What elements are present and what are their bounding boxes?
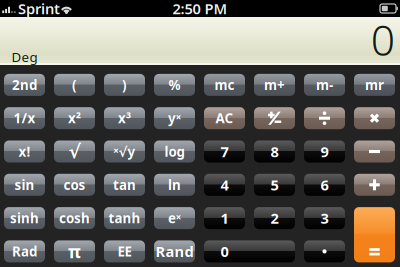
button[interactable]: x² (54, 107, 95, 129)
button[interactable]: % (154, 74, 195, 96)
button[interactable]: ln (154, 174, 195, 196)
staticText: m- (316, 76, 333, 94)
button[interactable]: x! (4, 140, 45, 162)
staticText: Rad (12, 242, 37, 260)
button[interactable]: yˣ (154, 107, 195, 129)
staticText: 2nd (12, 76, 37, 94)
button[interactable]: EE (104, 240, 145, 262)
button[interactable]: cos (54, 174, 95, 196)
staticText: 8 (270, 142, 278, 161)
button[interactable]: Plus (354, 174, 395, 196)
staticText: 2:50 PM (172, 0, 227, 18)
staticText: x! (18, 143, 30, 160)
button[interactable]: 1/x (4, 107, 45, 129)
button[interactable]: 7 (204, 140, 245, 162)
button[interactable]: sinh (4, 207, 45, 229)
button[interactable]: sin (4, 174, 45, 196)
staticText: EE (117, 242, 131, 260)
staticText: 4 (220, 175, 228, 195)
staticText: 5 (270, 175, 278, 195)
staticText: 6 (320, 175, 328, 195)
button[interactable]: x³ (104, 107, 145, 129)
button[interactable]: 4 (204, 174, 245, 196)
button[interactable]: eˣ (154, 207, 195, 229)
staticText: 1/x (13, 109, 35, 127)
button[interactable]: 5 (254, 174, 295, 196)
staticText: 2 (270, 208, 278, 228)
button[interactable]: Equals (354, 207, 395, 262)
staticText: mr (365, 76, 384, 94)
staticText: 1 (220, 208, 228, 228)
staticText: 7 (220, 142, 228, 161)
button[interactable]: 2nd (4, 74, 45, 96)
staticText: log (164, 143, 184, 160)
staticText: x² (68, 109, 81, 127)
button[interactable]: Minus (354, 140, 395, 162)
button[interactable]: 2 (254, 207, 295, 229)
button[interactable]: mc (204, 74, 245, 96)
button[interactable]: 0 (204, 240, 295, 262)
staticText: ) (122, 76, 127, 94)
button[interactable]: log (154, 140, 195, 162)
button[interactable]: 9 (304, 140, 345, 162)
button[interactable]: ( (54, 74, 95, 96)
staticText: m+ (264, 76, 285, 94)
staticText: eˣ (168, 209, 181, 227)
button[interactable]: cosh (54, 207, 95, 229)
staticText: √ (68, 141, 80, 162)
button[interactable]: π (54, 240, 95, 262)
staticText: ( (72, 76, 77, 94)
staticText: π (68, 240, 81, 263)
staticText: ˣ√y (113, 143, 135, 160)
staticText: cos (63, 176, 85, 194)
staticText: mc (214, 76, 234, 94)
staticText: sin (14, 176, 34, 194)
button[interactable]: 1 (204, 207, 245, 229)
staticText: 9 (320, 142, 328, 161)
button[interactable]: Rad (4, 240, 45, 262)
button[interactable]: m- (304, 74, 345, 96)
button[interactable]: mr (354, 74, 395, 96)
staticText: yˣ (168, 109, 181, 127)
staticText: ln (168, 176, 181, 194)
staticText: tan (113, 176, 136, 194)
button[interactable]: Rand (154, 240, 195, 262)
staticText: AC (215, 109, 233, 127)
button[interactable]: 3 (304, 207, 345, 229)
staticText: Deg (11, 48, 37, 66)
staticText: tanh (108, 209, 140, 227)
staticText: Sprint (18, 0, 60, 18)
button[interactable]: tan (104, 174, 145, 196)
button[interactable]: ) (104, 74, 145, 96)
staticText: 0 (371, 11, 395, 68)
staticText: 3 (320, 208, 328, 228)
button[interactable]: 8 (254, 140, 295, 162)
button[interactable]: AC (204, 107, 245, 129)
button[interactable]: ˣ√y (104, 140, 145, 162)
button[interactable]: Multiply (354, 107, 395, 129)
button[interactable]: √ (54, 140, 95, 162)
staticText: sinh (10, 209, 39, 227)
button[interactable]: tanh (104, 207, 145, 229)
button[interactable]: Divide (304, 107, 345, 129)
button[interactable]: Plus minus (254, 107, 295, 129)
staticText: x³ (118, 109, 131, 127)
staticText: 0 (220, 242, 228, 261)
staticText: % (168, 76, 180, 94)
button[interactable]: Decimal point (304, 240, 345, 262)
button[interactable]: 6 (304, 174, 345, 196)
staticText: Rand (155, 242, 193, 261)
button[interactable]: m+ (254, 74, 295, 96)
staticText: cosh (59, 209, 90, 227)
